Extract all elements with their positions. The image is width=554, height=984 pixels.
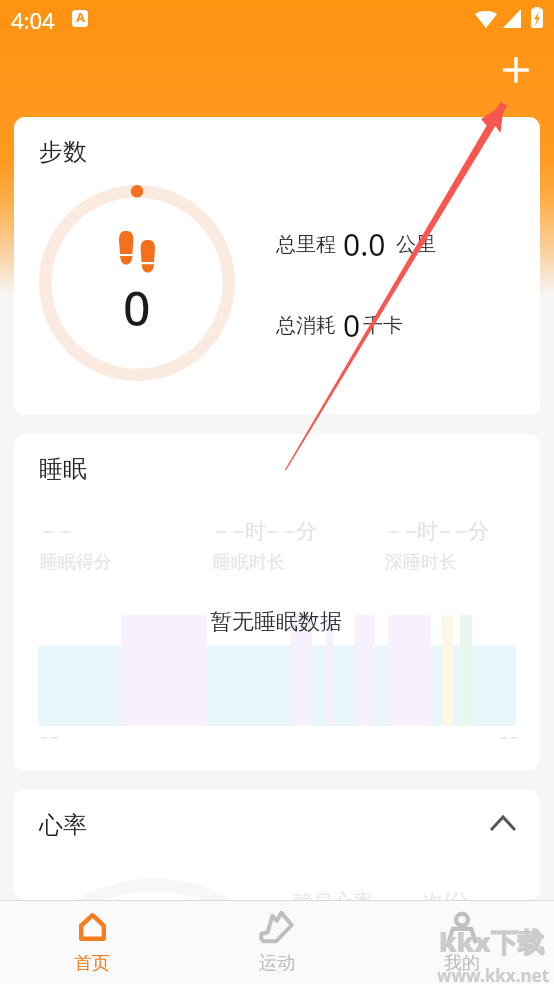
staticText: 暂无睡眠数据 [210, 608, 342, 636]
staticText: －－时－－分 [385, 518, 487, 544]
staticText: －－ [498, 729, 520, 747]
staticText: 我的 [444, 952, 480, 975]
staticText: 4:04 [11, 5, 55, 35]
staticText: 首页 [74, 952, 110, 975]
staticText: 总里程 [276, 232, 336, 257]
staticText: －－ [38, 729, 60, 747]
staticText: 睡眠得分 [40, 551, 112, 574]
button[interactable]: 睡眠 [14, 434, 540, 770]
staticText: 静息心率 －－ 次/分 [293, 887, 469, 900]
staticText: －－时－－分 [213, 518, 315, 544]
button[interactable]: 心率 [14, 790, 540, 900]
staticText: 步数 [39, 137, 87, 167]
staticText: 0.0 [343, 224, 386, 265]
staticText: －－ [40, 518, 74, 544]
staticText: 0 [123, 275, 151, 340]
button[interactable]: 运动 [184, 901, 369, 984]
staticText: A [76, 10, 85, 25]
staticText: www.kkx.net [437, 964, 550, 984]
staticText: 运动 [259, 952, 295, 975]
button[interactable]: Collapse [485, 805, 521, 841]
button[interactable]: 我的 [369, 901, 554, 984]
staticText: 千卡 [363, 313, 403, 338]
staticText: 0 [343, 305, 361, 346]
button[interactable]: 首页 [0, 901, 184, 984]
staticText: 睡眠时长 [213, 551, 285, 574]
staticText: kkx下载 [439, 923, 545, 960]
staticText: 睡眠 [39, 454, 87, 484]
staticText: 心率 [39, 810, 87, 840]
button[interactable]: Add [493, 47, 538, 92]
staticText: 公里 [396, 232, 436, 257]
button[interactable]: 步数 [14, 117, 540, 415]
staticText: 总消耗 [276, 313, 336, 338]
staticText: 深睡时长 [385, 551, 457, 574]
